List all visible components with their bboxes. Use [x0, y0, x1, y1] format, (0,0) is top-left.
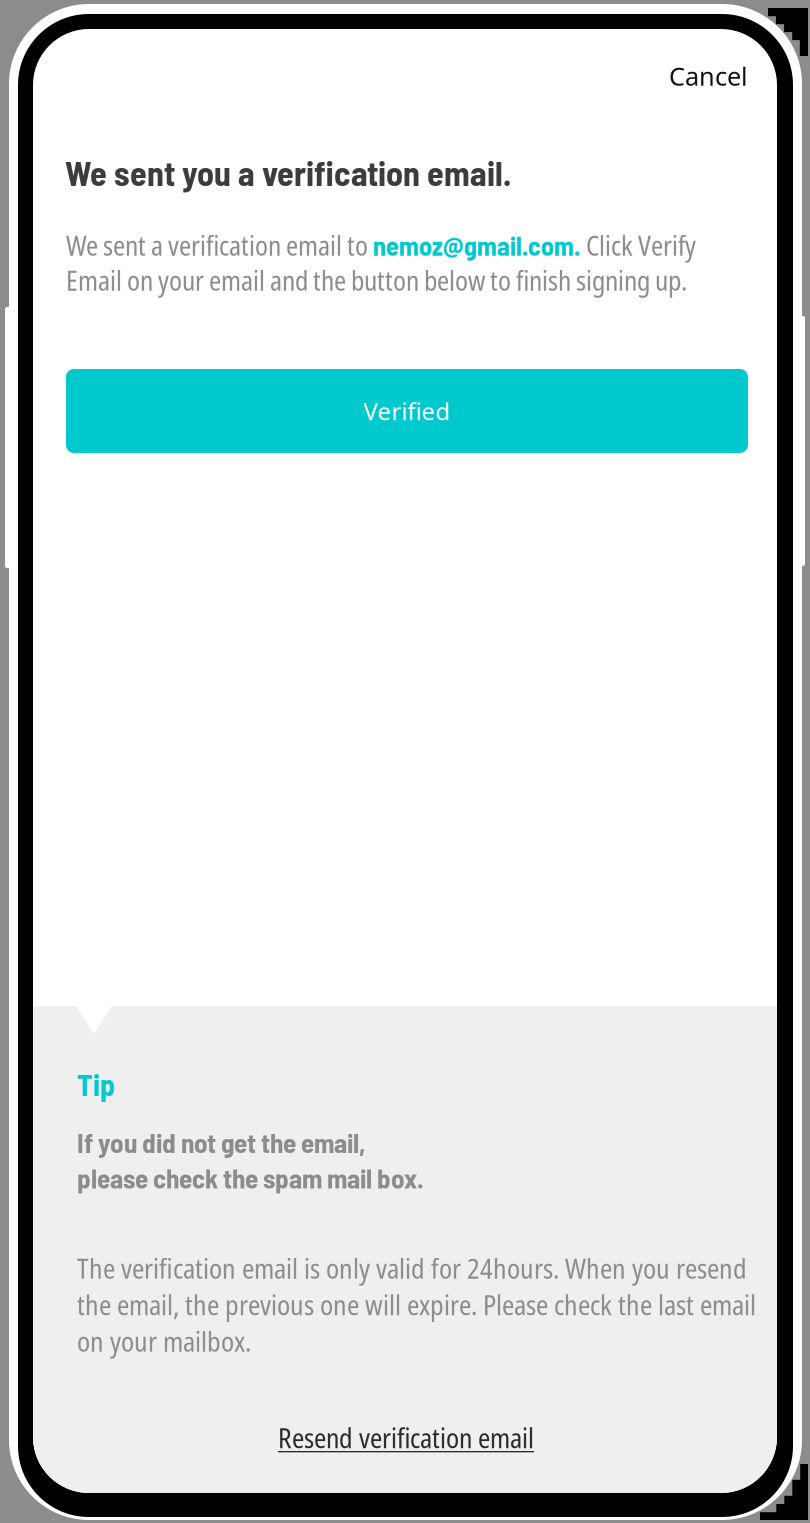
staticText: We sent a verification email to nemoz@gm… [66, 228, 696, 298]
staticText: Cancel [669, 59, 748, 93]
staticText: Resend verification email [278, 1420, 534, 1456]
button[interactable]: Resend verification email [256, 1414, 556, 1462]
button[interactable]: Cancel [608, 50, 748, 102]
staticText: Verified [363, 395, 450, 427]
staticText: If you did not get the email, please che… [77, 1126, 424, 1194]
staticText: Tip [77, 1066, 115, 1102]
button[interactable]: Verified [66, 369, 748, 453]
staticText: We sent you a verification email. [65, 152, 511, 193]
staticText: The verification email is only valid for… [77, 1250, 756, 1359]
